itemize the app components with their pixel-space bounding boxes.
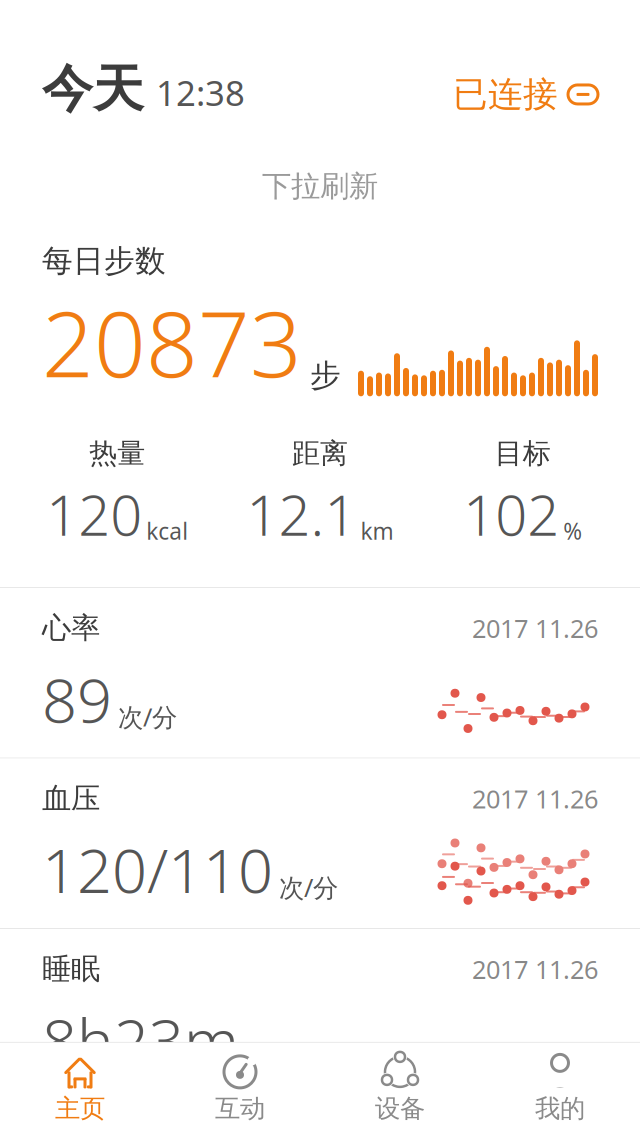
staticText: 互动 (215, 1093, 265, 1124)
staticText: 20873 (42, 282, 302, 402)
staticText: 12.1 (246, 477, 356, 551)
button[interactable]: 已连接 (453, 73, 598, 116)
staticText: 2017 11.26 (472, 782, 598, 815)
staticText: 我的 (535, 1093, 585, 1124)
staticText: km (360, 516, 393, 546)
staticText: 步 (310, 357, 341, 394)
staticText: 下拉刷新 (262, 168, 378, 204)
button[interactable]: 体重 (0, 1099, 640, 1138)
staticText: 睡眠 (42, 951, 100, 987)
staticText: % (563, 516, 582, 546)
staticText: 102 (463, 477, 559, 551)
button[interactable]: 血压 (0, 759, 640, 928)
button[interactable]: 互动 (160, 1047, 320, 1134)
staticText: 2017 11.26 (472, 952, 598, 986)
staticText: 8h23m (42, 999, 239, 1080)
staticText: 心率 (42, 610, 100, 646)
staticText: 目标 (495, 436, 551, 471)
staticText: 120/110 (42, 829, 273, 910)
staticText: 设备 (375, 1093, 425, 1124)
button[interactable]: 设备 (320, 1047, 480, 1134)
staticText: 89 (42, 658, 112, 739)
staticText: 血压 (42, 781, 100, 817)
staticText: 次/分 (118, 700, 177, 733)
staticText: 距离 (292, 436, 348, 471)
staticText: 热量 (89, 436, 145, 471)
staticText: 每日步数 (42, 242, 166, 280)
staticText: 主页 (55, 1093, 105, 1124)
staticText: 2017 11.26 (472, 611, 598, 645)
staticText: kcal (146, 516, 188, 546)
staticText: 120 (46, 477, 142, 551)
staticText: 已连接 (453, 73, 558, 116)
staticText: 12:38 (156, 69, 245, 115)
button[interactable]: 睡眠 (0, 929, 640, 1098)
button[interactable]: 心率 (0, 588, 640, 758)
button[interactable]: 主页 (0, 1047, 160, 1134)
staticText: 今天 (42, 58, 144, 120)
button[interactable]: 我的 (480, 1047, 640, 1134)
staticText: 次/分 (279, 870, 338, 904)
